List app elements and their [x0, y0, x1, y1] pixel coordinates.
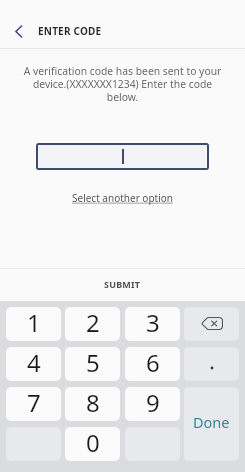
staticText: 4	[27, 347, 41, 379]
button[interactable]: Select another option	[72, 191, 173, 205]
button[interactable]: 4	[6, 347, 61, 381]
staticText: 5	[86, 347, 100, 379]
staticText: 3	[146, 307, 160, 339]
staticText: 6	[146, 347, 160, 379]
button[interactable]: 9	[125, 387, 180, 421]
button[interactable]	[36, 143, 209, 170]
button[interactable]: 5	[65, 347, 120, 381]
staticText: SUBMIT	[104, 278, 141, 290]
button[interactable]: 0	[65, 427, 120, 461]
button[interactable]: 1	[6, 307, 61, 341]
button[interactable]: SUBMIT	[0, 269, 245, 298]
button[interactable]: Backspace	[184, 307, 239, 341]
button[interactable]: Back	[0, 14, 38, 48]
button[interactable]: 2	[65, 307, 120, 341]
button[interactable]: Decimal point	[184, 347, 239, 381]
staticText: A verification code has been sent to you…	[22, 64, 223, 104]
staticText: 8	[86, 387, 100, 419]
staticText: ENTER CODE	[38, 24, 102, 38]
button[interactable]: 7	[6, 387, 61, 421]
staticText: 0	[86, 427, 100, 459]
staticText: 9	[146, 387, 160, 419]
staticText: Done	[193, 412, 230, 432]
button[interactable]: 6	[125, 347, 180, 381]
staticText: 1	[27, 307, 41, 339]
button[interactable]: 3	[125, 307, 180, 341]
button[interactable]: Done	[184, 387, 239, 461]
staticText: 2	[86, 307, 100, 339]
button[interactable]: 8	[65, 387, 120, 421]
staticText: 7	[27, 387, 41, 419]
